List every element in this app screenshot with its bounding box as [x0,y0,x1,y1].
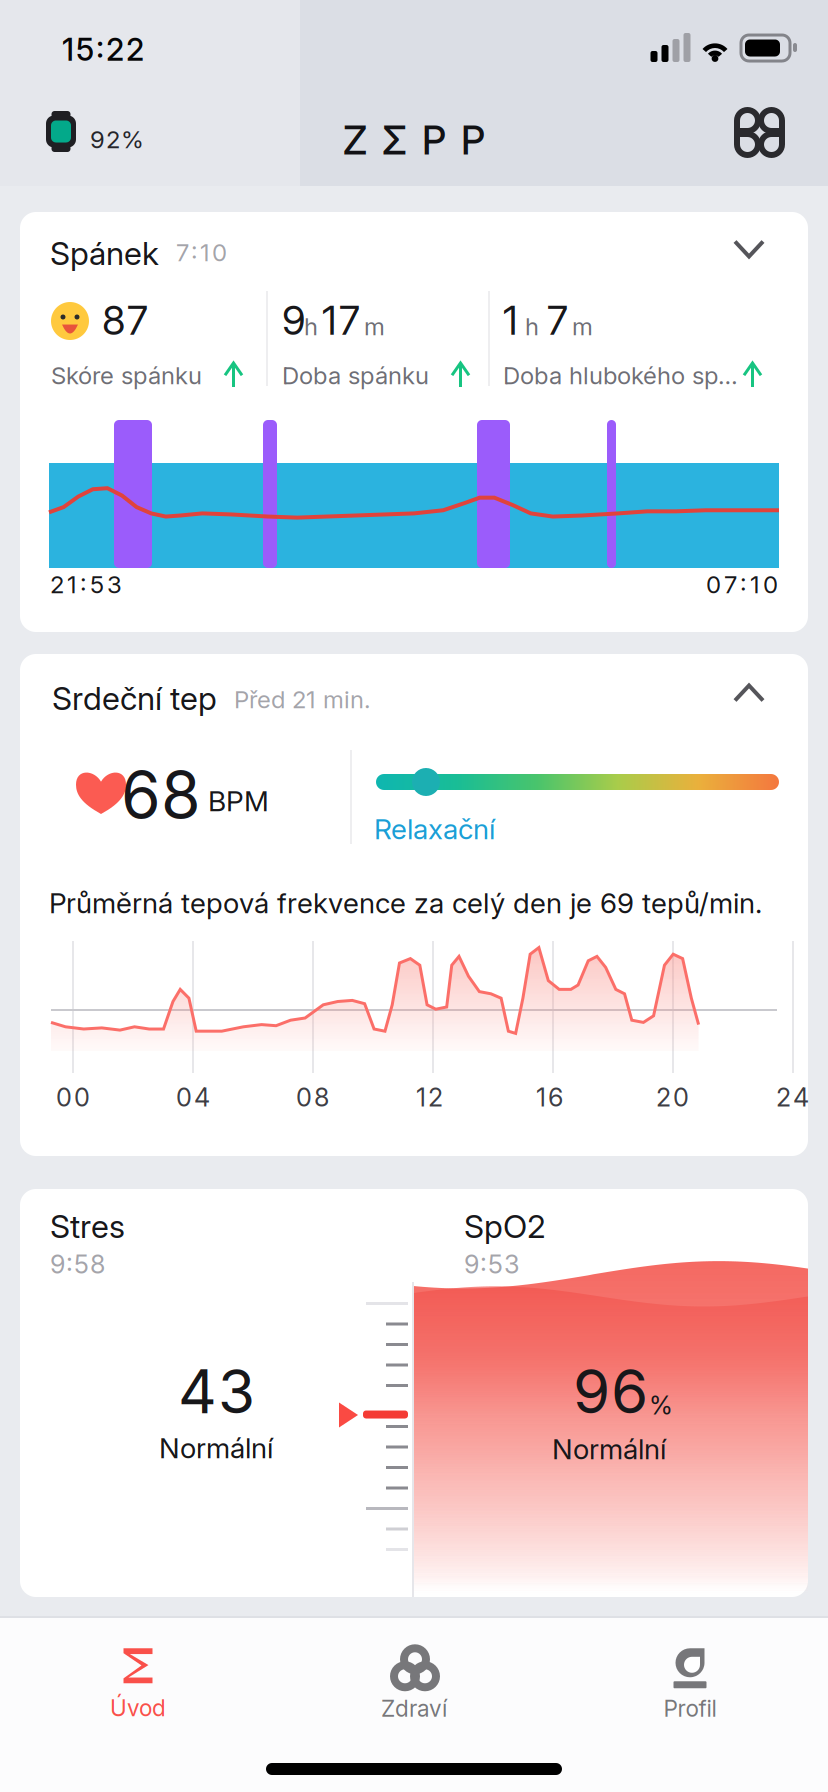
staticText: Srdeční tep [52,679,217,718]
button[interactable]: Collapse heart rate [714,662,784,724]
staticText: Z Σ P P [343,117,485,164]
staticText: 9 [282,296,306,344]
staticText: Úvod [110,1694,166,1722]
staticText: Doba spánku [282,361,429,390]
staticText: h [525,312,539,341]
staticText: 92% [90,125,144,154]
button[interactable]: 9 [282,294,486,390]
staticText: Relaxační [374,812,495,846]
staticText: 21:53 [50,570,122,599]
staticText: Normální [552,1432,666,1466]
button[interactable]: Profil [552,1637,828,1733]
button[interactable]: Device battery 92 percent [30,92,190,172]
button[interactable]: Apps [715,92,805,172]
staticText: Zdraví [381,1695,447,1722]
staticText: 9:58 [50,1249,105,1280]
staticText: 16 [536,1082,563,1113]
staticText: 7:10 [176,238,227,267]
staticText: 12 [416,1082,443,1113]
staticText: Skóre spánku [51,361,202,390]
button[interactable]: 1 [503,294,778,390]
staticText: Před 21 min. [234,685,371,714]
staticText: 87 [102,296,148,344]
staticText: h [304,312,318,341]
staticText: 07:10 [706,570,778,599]
staticText: Profil [663,1695,716,1722]
staticText: 17 [322,296,360,344]
staticText: 00 [56,1082,90,1113]
staticText: 15:22 [62,31,144,68]
staticText: Normální [159,1431,273,1465]
button[interactable]: Zdraví [276,1637,552,1733]
button[interactable]: 87 [51,294,259,390]
staticText: 20 [656,1082,689,1113]
staticText: Průměrná tepová frekvence za celý den je… [49,886,762,920]
staticText: 43 [178,1355,255,1428]
staticText: 7 [547,296,568,344]
staticText: 9:53 [464,1249,520,1280]
staticText: 08 [296,1082,329,1113]
staticText: 96 [573,1355,648,1428]
staticText: BPM [208,784,269,818]
staticText: Stres [50,1207,125,1246]
staticText: Doba hlubokého sp… [503,361,738,390]
button[interactable]: Úvod [0,1637,276,1733]
staticText: 24 [776,1082,809,1113]
staticText: m [364,312,385,341]
button[interactable]: Collapse sleep [714,218,784,280]
staticText: 1 [503,296,518,344]
staticText: SpO2 [464,1207,546,1246]
staticText: 68 [121,756,201,833]
staticText: m [572,312,593,341]
staticText: % [649,1390,673,1421]
staticText: Spánek [50,234,159,273]
staticText: 04 [176,1082,210,1113]
